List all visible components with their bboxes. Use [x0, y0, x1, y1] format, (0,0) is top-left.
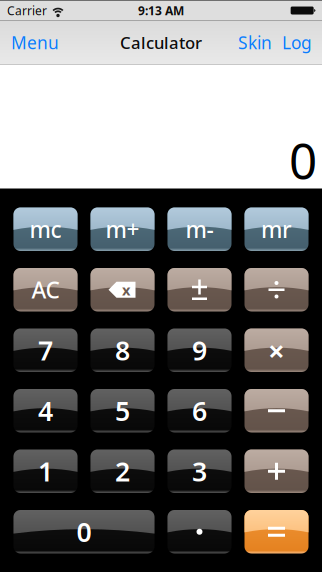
button[interactable]: x — [90, 268, 154, 311]
button[interactable]: 2 — [90, 449, 154, 493]
button[interactable]: Log — [277, 20, 317, 64]
button[interactable]: m- — [167, 207, 231, 251]
button[interactable]: × — [244, 328, 308, 372]
staticText: mc — [29, 214, 61, 245]
button[interactable]: Skin — [233, 20, 277, 64]
staticText: Carrier — [7, 2, 47, 19]
button[interactable]: 6 — [167, 389, 231, 432]
staticText: 2 — [115, 453, 130, 489]
staticText: 4 — [38, 393, 53, 429]
staticText: x — [122, 280, 130, 299]
staticText: 8 — [115, 332, 130, 368]
button[interactable]: Menu — [0, 20, 70, 64]
button[interactable]: mc — [13, 207, 77, 251]
staticText: 0 — [76, 514, 91, 550]
button[interactable] — [244, 510, 308, 553]
staticText: m- — [185, 214, 213, 245]
staticText: 1 — [38, 453, 53, 489]
button[interactable]: 3 — [167, 449, 231, 493]
button[interactable]: m+ — [90, 207, 154, 251]
staticText: 9 — [192, 332, 207, 368]
staticText: 5 — [115, 393, 130, 429]
button[interactable] — [167, 510, 231, 553]
button[interactable]: 5 — [90, 389, 154, 432]
button[interactable]: 4 — [13, 389, 77, 432]
button[interactable]: AC — [13, 268, 77, 311]
staticText: Skin — [238, 31, 272, 54]
staticText: × — [268, 331, 285, 370]
button[interactable] — [244, 389, 308, 432]
staticText: 9:13 AM — [138, 2, 184, 19]
button[interactable] — [167, 268, 231, 311]
button[interactable]: 9 — [167, 328, 231, 372]
button[interactable]: 8 — [90, 328, 154, 372]
button[interactable] — [244, 449, 308, 493]
staticText: Menu — [11, 31, 59, 54]
staticText: m+ — [105, 214, 139, 245]
staticText: Calculator — [120, 31, 202, 54]
button[interactable]: 7 — [13, 328, 77, 372]
staticText: 6 — [192, 393, 207, 429]
staticText: 7 — [38, 332, 53, 368]
staticText: 3 — [192, 453, 207, 489]
button[interactable]: mr — [244, 207, 308, 251]
button[interactable]: 0 — [13, 510, 154, 553]
staticText: Log — [282, 31, 312, 54]
button[interactable] — [244, 268, 308, 311]
staticText: mr — [261, 214, 292, 245]
button[interactable]: 1 — [13, 449, 77, 493]
staticText: AC — [31, 274, 59, 305]
staticText: 0 — [289, 126, 317, 193]
